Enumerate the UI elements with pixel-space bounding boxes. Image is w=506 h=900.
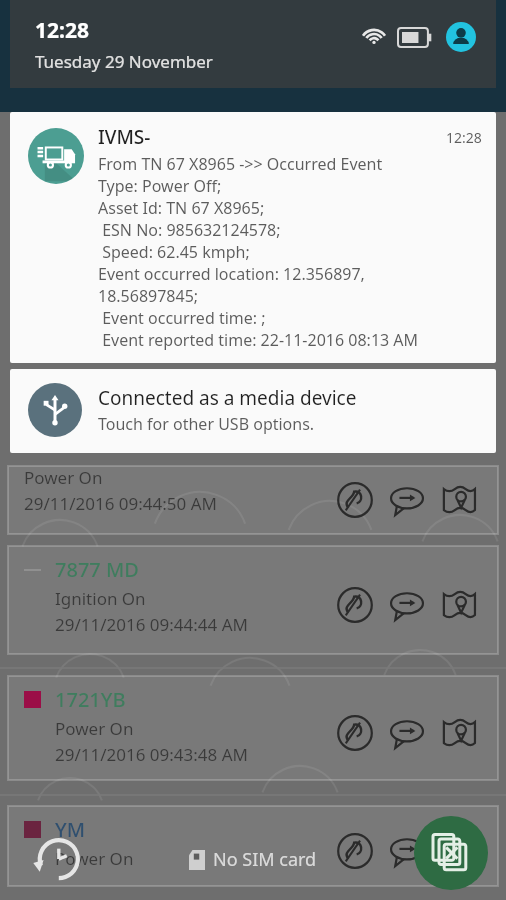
staticText: Connected as a media device xyxy=(98,385,357,411)
staticText: Ignition On xyxy=(55,587,146,610)
staticText: Power On xyxy=(55,847,134,870)
staticText: IVMS- xyxy=(98,124,151,150)
button[interactable]: Map xyxy=(438,712,480,754)
button[interactable]: 12:28 xyxy=(10,0,496,88)
button[interactable]: Message xyxy=(386,830,428,872)
button[interactable]: Message xyxy=(386,479,428,521)
button[interactable]: Message xyxy=(386,584,428,626)
staticText: 7877 MD xyxy=(55,556,139,583)
button[interactable]: Map xyxy=(438,479,480,521)
staticText: YM xyxy=(55,816,86,843)
button[interactable]: Map xyxy=(438,830,480,872)
button[interactable]: Call xyxy=(334,479,376,521)
button[interactable]: 1721YB xyxy=(8,676,498,780)
staticText: Tuesday 29 November xyxy=(35,50,213,73)
button[interactable]: IVMS- xyxy=(10,112,496,363)
staticText: Power On xyxy=(55,717,134,740)
staticText: 29/11/2016 09:43:48 AM xyxy=(55,743,249,766)
staticText: From TN 67 X8965 ->> Occurred Event xyxy=(98,153,383,175)
staticText: Type: Power Off; xyxy=(98,175,222,197)
staticText: Asset Id: TN 67 X8965; xyxy=(98,197,265,219)
staticText: Power On xyxy=(24,466,103,489)
staticText: Event reported time: 22-11-2016 08:13 AM xyxy=(98,329,419,351)
button[interactable]: User profile xyxy=(446,22,476,52)
staticText: Touch for other USB options. xyxy=(98,413,315,435)
button[interactable]: Connected as a media device xyxy=(10,369,496,453)
button[interactable]: Power On xyxy=(8,466,498,534)
button[interactable]: 7877 MD xyxy=(8,546,498,654)
button[interactable]: Message xyxy=(386,712,428,754)
button[interactable]: Clear all xyxy=(414,816,488,890)
staticText: No SIM card xyxy=(213,847,317,872)
staticText: 29/11/2016 09:44:50 AM xyxy=(24,492,218,515)
button[interactable]: Call xyxy=(334,830,376,872)
staticText: 1721YB xyxy=(55,686,126,713)
staticText: 12:28 xyxy=(35,16,89,45)
staticText: Speed: 62.45 kmph; xyxy=(98,241,250,263)
staticText: 12:28 xyxy=(446,128,482,147)
button[interactable]: Map xyxy=(438,584,480,626)
button[interactable]: Call xyxy=(334,712,376,754)
button[interactable]: Call xyxy=(334,584,376,626)
staticText: 18.56897845; xyxy=(98,285,199,307)
staticText: Event occurred location: 12.356897, xyxy=(98,263,365,285)
staticText: 29/11/2016 09:44:44 AM xyxy=(55,613,249,636)
button[interactable]: History xyxy=(28,830,84,886)
button[interactable]: YM xyxy=(8,806,498,886)
staticText: ESN No: 985632124578; xyxy=(98,219,281,241)
staticText: Event occurred time: ; xyxy=(98,307,266,329)
